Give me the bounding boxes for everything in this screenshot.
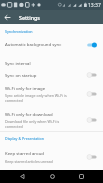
button[interactable] [0,36,103,53]
staticText: Automatic background sync [5,41,62,47]
staticText: Sync on startup [5,72,37,78]
staticText: Download file only when Wi-Fi is connect… [5,119,60,129]
button[interactable]: Home [44,170,60,183]
staticText: Synchronization [5,29,33,34]
button[interactable]: Wi-Fi only for download [84,113,100,127]
button[interactable]: Back [0,10,14,24]
staticText: Keep starred articles unread [5,159,53,164]
button[interactable] [0,146,103,168]
button[interactable] [0,69,103,82]
button[interactable]: Sync on startup [84,68,100,82]
staticText: Settings [19,14,40,21]
staticText: Wi-Fi only for image [5,85,46,91]
button[interactable]: Wi-Fi only for image [84,87,100,101]
staticText: Wi-Fi only for download [5,111,53,117]
staticText: Keep starred aroud [5,150,44,156]
button[interactable]: Keep starred aroud [84,150,100,164]
staticText: Display & Presentation [5,136,45,141]
button[interactable] [0,107,103,131]
staticText: Sync interval [5,60,31,66]
button[interactable] [0,54,103,69]
button[interactable] [0,82,103,106]
button[interactable]: Back [14,170,30,183]
button[interactable]: Automatic background sync [84,38,100,52]
button[interactable]: Recent apps [73,170,89,183]
staticText: Sync article image only when Wi-Fi is co… [5,93,67,103]
staticText: 13:37 [88,2,101,9]
